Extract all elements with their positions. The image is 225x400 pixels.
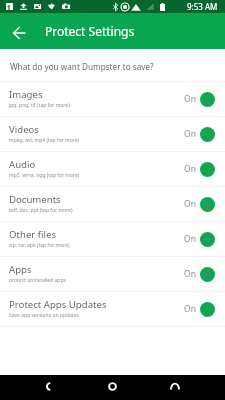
staticText: jpg, png, tif (tap for more)	[9, 102, 70, 109]
staticText: On	[184, 233, 196, 245]
staticText: Audio	[9, 158, 36, 171]
staticText: On	[184, 93, 196, 105]
button[interactable]: Audio	[0, 152, 225, 186]
staticText: Videos	[9, 123, 39, 136]
button[interactable]: Videos	[0, 117, 225, 151]
staticText: protect uninstalled apps	[9, 277, 66, 284]
staticText: Protect Settings	[45, 23, 135, 39]
staticText: Documents	[9, 193, 61, 206]
staticText: Other files	[9, 228, 57, 241]
button[interactable]: Back	[28, 375, 72, 400]
button[interactable]: Back	[0, 13, 36, 49]
button[interactable]: Protect Apps Updates	[0, 292, 225, 326]
staticText: pdf, doc, ppt (tap for more)	[9, 207, 73, 214]
staticText: On	[184, 198, 196, 210]
staticText: On	[184, 268, 196, 280]
staticText: Apps	[9, 263, 32, 276]
button[interactable]: Other files	[0, 222, 225, 256]
staticText: Images	[9, 88, 43, 101]
staticText: zip, rar, apk (tap for more)	[9, 242, 70, 249]
staticText: mpeg, avi, mp4 (tap for more)	[9, 137, 80, 144]
button[interactable]: Home	[90, 375, 134, 400]
button[interactable]: Recents	[153, 375, 197, 400]
staticText: Protect Apps Updates	[9, 298, 107, 311]
staticText: What do you want Dumpster to save?	[10, 61, 154, 72]
staticText: Save app versions on updates	[9, 312, 79, 319]
button[interactable]: Documents	[0, 187, 225, 221]
staticText: 9:53 AM	[187, 1, 218, 12]
staticText: On	[184, 163, 196, 175]
staticText: mp3, wma, ogg (tap for more)	[9, 172, 80, 179]
button[interactable]: Apps	[0, 257, 225, 291]
staticText: On	[184, 303, 196, 315]
staticText: On	[184, 128, 196, 140]
button[interactable]: Images	[0, 82, 225, 116]
